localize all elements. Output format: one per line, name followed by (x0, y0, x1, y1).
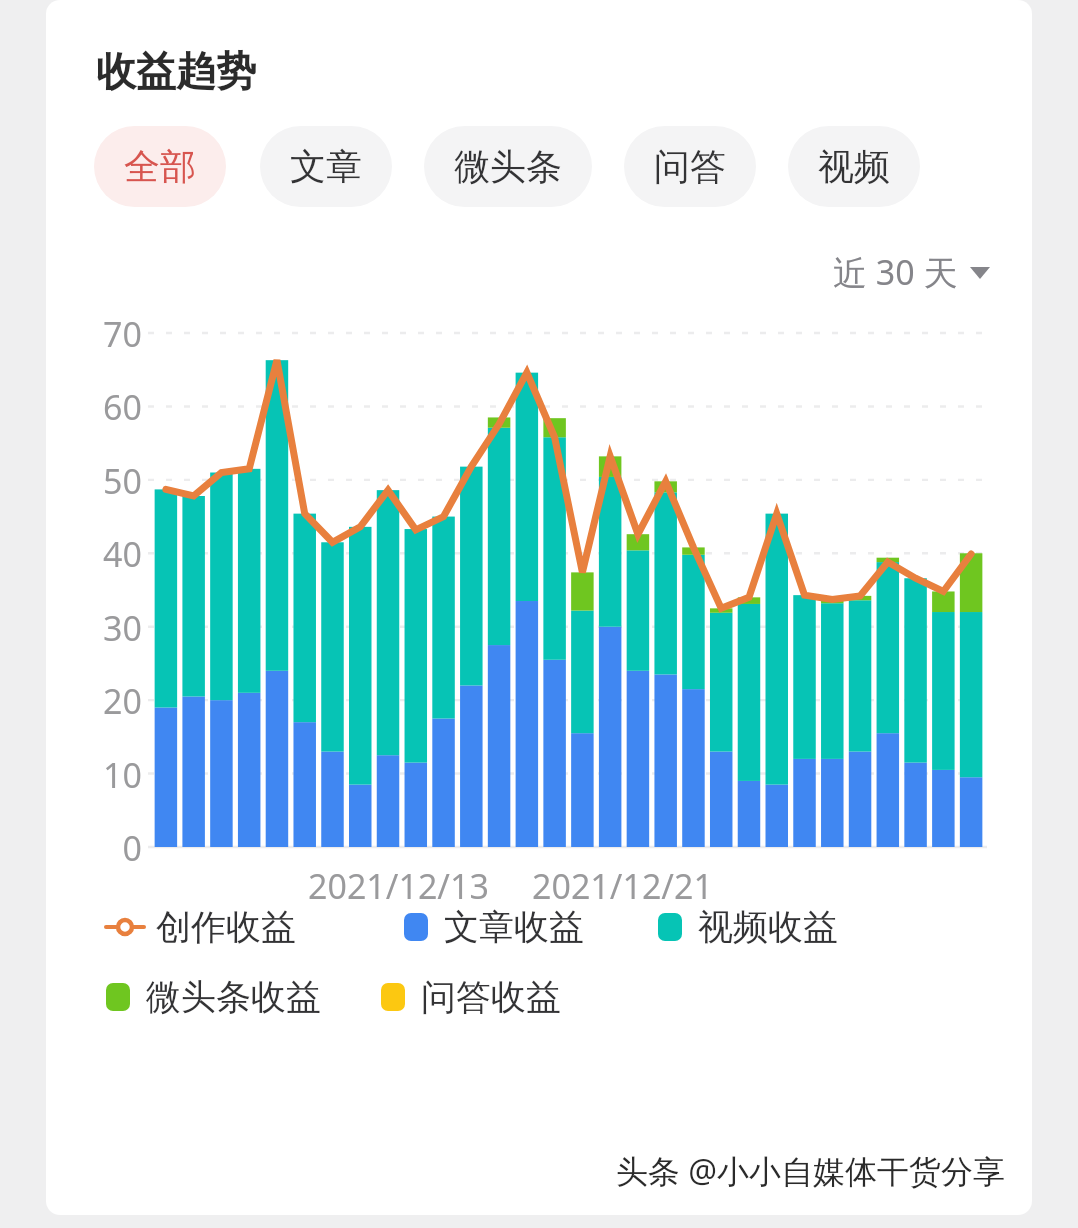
button[interactable]: 文章收益 (404, 905, 584, 949)
button[interactable]: 视频收益 (658, 905, 838, 949)
staticText: 问答收益 (421, 975, 561, 1019)
button[interactable]: 近 30 天 (829, 243, 994, 301)
button[interactable]: 视频 (788, 126, 920, 207)
button[interactable]: 微头条收益 (106, 975, 321, 1019)
staticText: 40 (82, 531, 142, 577)
staticText: 30 (82, 605, 142, 651)
staticText: 文章收益 (444, 905, 584, 949)
staticText: 2021/12/13 (308, 863, 489, 909)
staticText: 微头条收益 (146, 975, 321, 1019)
staticText: 60 (82, 384, 142, 430)
staticText: 视频 (818, 144, 890, 189)
button[interactable]: 微头条 (424, 126, 592, 207)
staticText: 50 (82, 458, 142, 504)
button[interactable]: 创作收益 (106, 905, 296, 949)
staticText: 0 (82, 825, 142, 871)
staticText: 2021/12/21 (532, 863, 713, 909)
button[interactable]: 问答收益 (381, 975, 561, 1019)
other: Change date range (970, 266, 990, 279)
staticText: 创作收益 (156, 905, 296, 949)
staticText: 微头条 (454, 144, 562, 189)
staticText: 收益趋势 (96, 46, 256, 96)
staticText: 文章 (290, 144, 362, 189)
staticText: 20 (82, 678, 142, 724)
staticText: 近 30 天 (833, 249, 958, 295)
staticText: 10 (82, 752, 142, 798)
staticText: 视频收益 (698, 905, 838, 949)
staticText: 问答 (654, 144, 726, 189)
staticText: 70 (82, 311, 142, 357)
button[interactable]: 文章 (260, 126, 392, 207)
button[interactable]: 问答 (624, 126, 756, 207)
button[interactable]: 全部 (94, 126, 226, 207)
staticText: 全部 (124, 144, 196, 189)
staticText: 头条 @小小自媒体干货分享 (616, 1149, 1006, 1193)
